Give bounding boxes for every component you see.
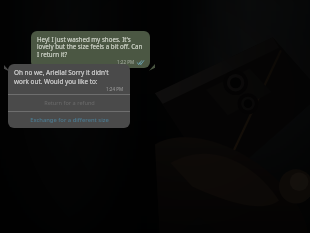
staticText: Oh no we, Ariella! Sorry it didn't work … <box>14 68 124 86</box>
button[interactable]: Oh no we, Ariella! Sorry it didn't work … <box>8 64 130 128</box>
button[interactable]: Hey! I just washed my shoes. It's lovely… <box>31 31 150 68</box>
staticText: Hey! I just washed my shoes. It's lovely… <box>37 35 144 59</box>
button[interactable]: Return for a refund <box>8 95 130 111</box>
staticText: 1:22 PM <box>117 59 135 65</box>
staticText: 1:24 PM <box>106 86 124 92</box>
staticText: Return for a refund <box>44 99 95 107</box>
button[interactable]: Exchange for a different size <box>8 112 130 128</box>
staticText: Exchange for a different size <box>30 116 109 124</box>
